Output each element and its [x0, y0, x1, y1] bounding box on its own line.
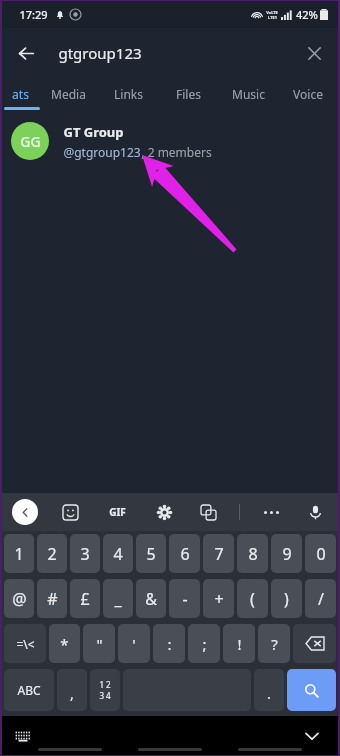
button[interactable]: 2	[37, 534, 67, 573]
staticText: GT Group	[63, 123, 124, 141]
staticText: 17:29	[19, 7, 48, 22]
button[interactable]: Clear	[290, 29, 338, 77]
button[interactable]: Files	[158, 78, 218, 110]
staticText: 1	[14, 543, 24, 565]
staticText: '	[132, 634, 136, 654]
button[interactable]: Keyboard	[12, 725, 34, 747]
staticText: 8	[248, 543, 258, 565]
button[interactable]: "	[83, 624, 115, 663]
staticText: Music	[232, 86, 265, 102]
button[interactable]: +	[203, 579, 234, 618]
button[interactable]: .	[254, 669, 284, 711]
button[interactable]: 1	[4, 534, 34, 573]
staticText: 6	[180, 543, 190, 565]
staticText: Links	[114, 86, 143, 102]
button[interactable]: *	[49, 624, 80, 663]
button[interactable]: Back	[12, 499, 38, 525]
button[interactable]: :	[153, 624, 185, 663]
button[interactable]: 1 2	[90, 669, 120, 711]
staticText: £	[80, 588, 90, 610]
button[interactable]: £	[70, 579, 100, 618]
staticText: ,	[70, 684, 74, 703]
staticText: @gtgroup123	[63, 144, 141, 160]
button[interactable]: #	[37, 579, 67, 618]
button[interactable]: !	[223, 624, 255, 663]
button[interactable]: /	[305, 579, 336, 618]
button[interactable]: 6	[169, 534, 200, 573]
button[interactable]: 8	[237, 534, 268, 573]
button[interactable]: Back	[2, 29, 50, 77]
button[interactable]: GG	[2, 110, 338, 172]
staticText: .	[267, 684, 271, 703]
staticText: 5	[146, 543, 156, 565]
button[interactable]: &	[136, 579, 166, 618]
staticText: 0	[316, 543, 326, 565]
button[interactable]: )	[271, 579, 302, 618]
staticText: /	[318, 588, 324, 610]
staticText: 7	[214, 543, 224, 565]
staticText: "	[96, 634, 103, 654]
staticText: LTE1	[268, 15, 277, 20]
staticText: GG	[20, 132, 41, 151]
staticText: ABC	[17, 682, 41, 698]
staticText: _	[114, 588, 122, 610]
button[interactable]: ?	[258, 624, 290, 663]
button[interactable]: 4	[103, 534, 133, 573]
button[interactable]: ats	[2, 78, 38, 110]
staticText: (	[250, 588, 255, 610]
button[interactable]: 5	[136, 534, 166, 573]
staticText: 2	[47, 543, 57, 565]
button[interactable]: GIF	[102, 497, 132, 527]
button[interactable]: Voice input	[302, 499, 328, 525]
button[interactable]: _	[103, 579, 133, 618]
button[interactable]: Links	[98, 78, 158, 110]
staticText: *	[60, 634, 69, 654]
staticText: Media	[51, 86, 86, 102]
button[interactable]: Settings	[151, 499, 177, 525]
button[interactable]: Media	[38, 78, 98, 110]
button[interactable]: 3	[70, 534, 100, 573]
staticText: @	[12, 588, 27, 610]
button[interactable]: More options	[258, 499, 284, 525]
staticText: , 2 members	[141, 144, 212, 160]
button[interactable]: Voice	[278, 78, 338, 110]
button[interactable]: (	[237, 579, 268, 618]
button[interactable]: Search	[287, 669, 336, 711]
button[interactable]: Stickers	[57, 499, 83, 525]
button[interactable]: '	[118, 624, 150, 663]
staticText: Files	[176, 86, 201, 102]
button[interactable]: Music	[218, 78, 278, 110]
staticText: =\<	[16, 636, 35, 652]
staticText: 1 2	[99, 679, 111, 690]
staticText: 3	[80, 543, 90, 565]
button[interactable]: Translate	[195, 499, 221, 525]
staticText: Voice	[293, 86, 323, 102]
staticText: 4	[113, 543, 123, 565]
button[interactable]: 0	[305, 534, 336, 573]
staticText: GIF	[109, 505, 126, 519]
button[interactable]: 7	[203, 534, 234, 573]
button[interactable]: ABC	[4, 669, 54, 711]
button[interactable]: 9	[271, 534, 302, 573]
staticText: ?	[271, 634, 278, 654]
staticText: gtgroup123	[58, 43, 142, 63]
button[interactable]: ,	[57, 669, 87, 711]
staticText: 42%	[296, 7, 318, 22]
staticText: 9	[282, 543, 292, 565]
staticText: ;	[202, 634, 207, 654]
button[interactable]: -	[169, 579, 200, 618]
staticText: +	[214, 588, 224, 610]
button[interactable]: Backspace	[293, 624, 336, 663]
button[interactable]: ;	[188, 624, 220, 663]
staticText: VoLTE	[266, 10, 278, 15]
staticText: :	[167, 634, 172, 654]
staticText: -	[182, 588, 188, 610]
button[interactable]: Hide keyboard	[300, 724, 324, 748]
staticText: #	[47, 588, 58, 610]
staticText: )	[284, 588, 289, 610]
staticText: 3 4	[99, 690, 111, 701]
button[interactable]: @	[4, 579, 34, 618]
staticText: &	[145, 588, 157, 610]
button[interactable]: =\<	[4, 624, 46, 663]
